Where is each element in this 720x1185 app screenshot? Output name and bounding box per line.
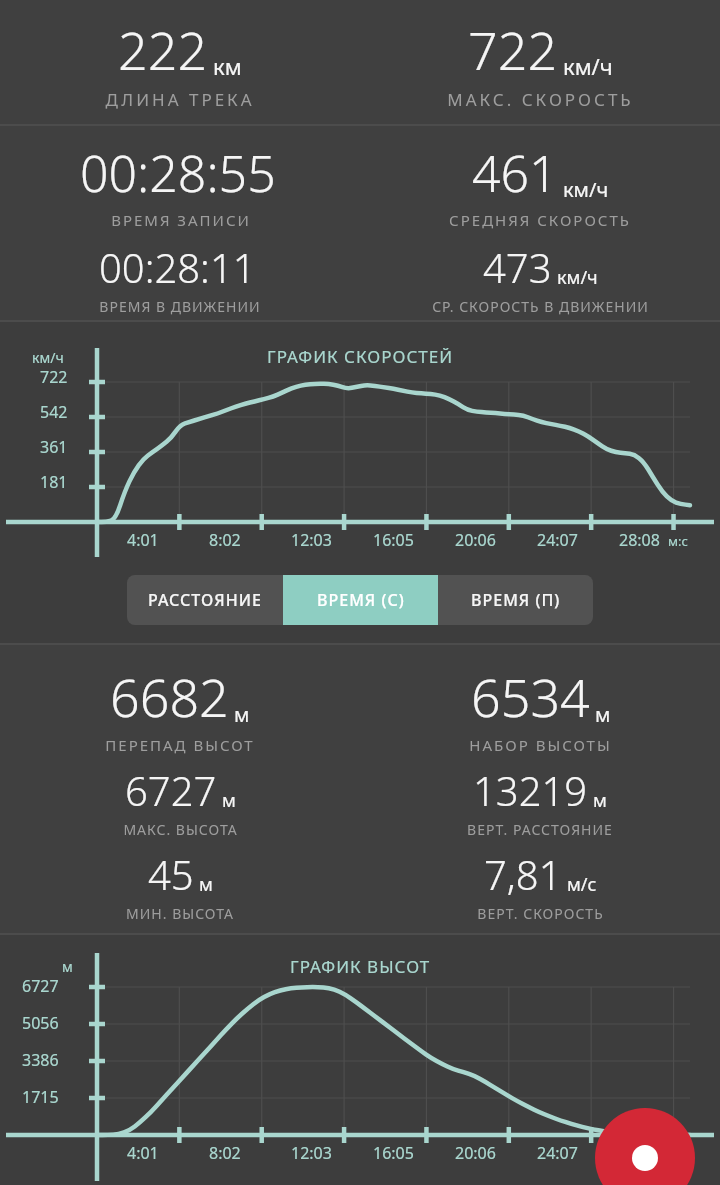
staticText: 6534: [471, 661, 590, 732]
button[interactable]: ВРЕМЯ (П): [438, 575, 593, 625]
staticText: ГРАФИК СКОРОСТЕЙ: [267, 345, 454, 368]
staticText: 8:02: [209, 529, 241, 551]
staticText: МАКС. ВЫСОТА: [123, 820, 238, 839]
button[interactable]: РАССТОЯНИЕ: [127, 575, 283, 625]
staticText: 24:07: [537, 1142, 578, 1164]
button[interactable]: 222: [0, 14, 360, 111]
staticText: 181: [40, 471, 68, 493]
staticText: 45: [148, 847, 194, 901]
staticText: ВЕРТ. СКОРОСТЬ: [477, 904, 604, 923]
staticText: НАБОР ВЫСОТЫ: [469, 735, 612, 755]
staticText: ГРАФИК ВЫСОТ: [290, 955, 431, 978]
staticText: 12:03: [291, 529, 332, 551]
staticText: м: [62, 957, 73, 976]
staticText: м: [234, 701, 250, 728]
staticText: РАССТОЯНИЕ: [148, 589, 262, 611]
staticText: 461: [472, 139, 558, 207]
staticText: 28:08: [619, 529, 660, 551]
staticText: км/ч: [563, 51, 613, 81]
button[interactable]: 00:28:55: [0, 139, 360, 316]
staticText: 6682: [110, 661, 229, 732]
staticText: 16:05: [373, 1142, 414, 1164]
staticText: 8:02: [209, 1142, 241, 1164]
staticText: 222: [118, 14, 208, 85]
staticText: ВЕРТ. РАССТОЯНИЕ: [467, 820, 613, 839]
staticText: 16:05: [373, 529, 414, 551]
staticText: 00:28:55: [80, 139, 276, 207]
staticText: км/ч: [32, 348, 64, 367]
staticText: ВРЕМЯ ЗАПИСИ: [111, 210, 251, 230]
staticText: 6727: [125, 763, 217, 817]
staticText: км/ч: [563, 176, 609, 203]
staticText: МИН. ВЫСОТА: [126, 904, 234, 923]
staticText: 361: [40, 436, 68, 458]
staticText: 20:06: [455, 1142, 496, 1164]
staticText: 00:28:11: [99, 240, 256, 294]
staticText: ДЛИНА ТРЕКА: [105, 88, 255, 111]
staticText: СР. СКОРОСТЬ В ДВИЖЕНИИ: [432, 297, 649, 316]
staticText: м: [199, 872, 213, 897]
staticText: 24:07: [537, 529, 578, 551]
staticText: 6727: [22, 975, 59, 997]
staticText: ВРЕМЯ (С): [317, 589, 405, 611]
staticText: ПЕРЕПАД ВЫСОТ: [105, 735, 255, 755]
staticText: 5056: [22, 1012, 59, 1034]
staticText: СРЕДНЯЯ СКОРОСТЬ: [449, 210, 631, 230]
staticText: 3386: [22, 1049, 59, 1071]
staticText: МАКС. СКОРОСТЬ: [447, 88, 634, 111]
button[interactable]: 6682: [0, 661, 360, 923]
button[interactable]: 722: [360, 14, 720, 111]
staticText: 473: [483, 240, 552, 294]
staticText: км: [213, 51, 242, 81]
staticText: 12:03: [291, 1142, 332, 1164]
staticText: 542: [40, 401, 68, 423]
staticText: 13219: [473, 763, 588, 817]
staticText: м:с: [668, 532, 688, 550]
staticText: км/ч: [557, 265, 598, 290]
staticText: 7,81: [484, 847, 562, 901]
button[interactable]: Record track: [595, 1108, 695, 1185]
staticText: м: [595, 701, 611, 728]
button[interactable]: 461: [360, 139, 720, 316]
staticText: 4:01: [127, 1142, 159, 1164]
staticText: ВРЕМЯ В ДВИЖЕНИИ: [99, 297, 261, 316]
staticText: 1715: [22, 1086, 59, 1108]
staticText: ВРЕМЯ (П): [471, 589, 561, 611]
staticText: 20:06: [455, 529, 496, 551]
button[interactable]: 6534: [360, 661, 720, 923]
staticText: 722: [468, 14, 558, 85]
button[interactable]: ВРЕМЯ (С): [283, 575, 438, 625]
staticText: 722: [40, 366, 68, 388]
staticText: м/с: [567, 872, 597, 897]
staticText: м: [222, 788, 236, 813]
staticText: 4:01: [127, 529, 159, 551]
staticText: м: [593, 788, 607, 813]
